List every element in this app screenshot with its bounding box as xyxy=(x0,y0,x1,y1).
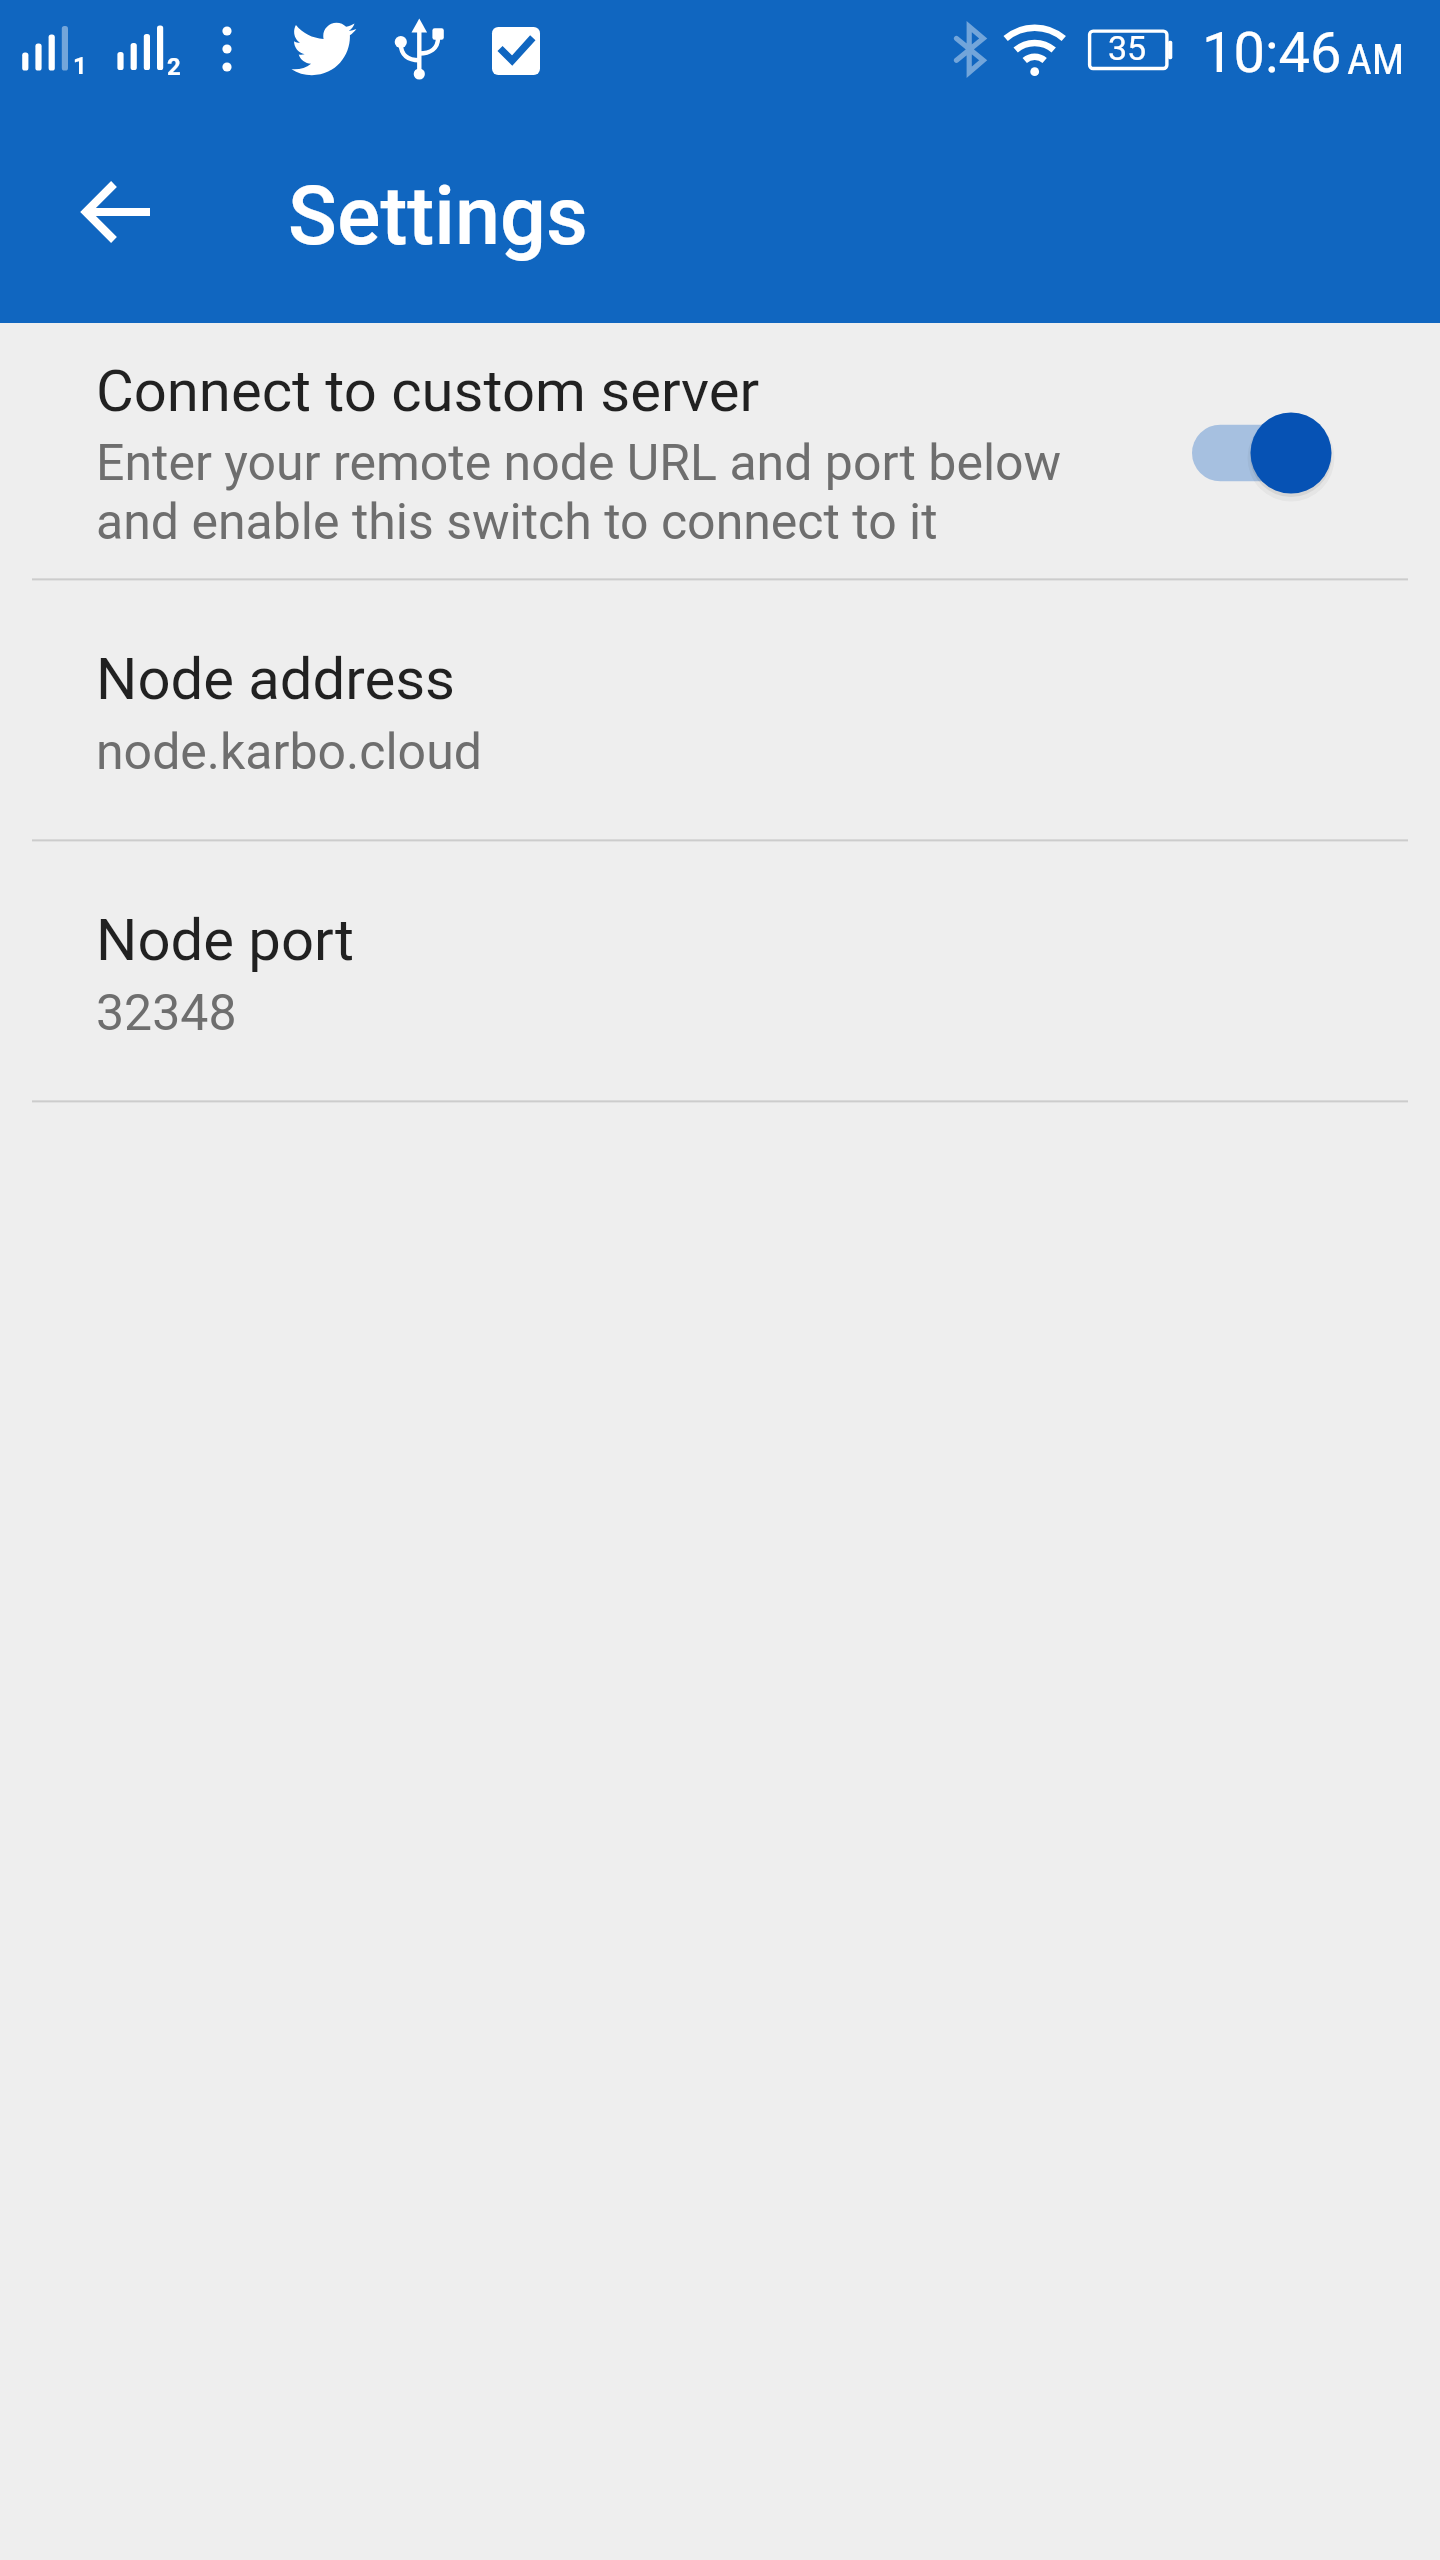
button[interactable]: Navigate up xyxy=(34,128,202,296)
staticText: Enter your remote node URL and port belo… xyxy=(96,434,1062,552)
staticText: 10:46 xyxy=(1202,20,1342,86)
staticText: Settings xyxy=(288,169,588,264)
button[interactable]: Node address xyxy=(0,581,1440,839)
staticText: AM xyxy=(1347,34,1405,84)
staticText: 32348 xyxy=(96,984,237,1043)
button[interactable]: Node port xyxy=(0,842,1440,1100)
button[interactable]: Connect to custom server toggle, on xyxy=(1163,389,1371,517)
staticText: node.karbo.cloud xyxy=(96,723,482,782)
staticText: 2 xyxy=(167,53,181,81)
staticText: 35 xyxy=(1108,28,1147,68)
staticText: Node address xyxy=(96,645,456,713)
button[interactable]: Connect to custom server xyxy=(0,323,1440,578)
staticText: 1 xyxy=(73,52,87,80)
staticText: Connect to custom server xyxy=(96,357,760,425)
staticText: Node port xyxy=(96,906,354,974)
